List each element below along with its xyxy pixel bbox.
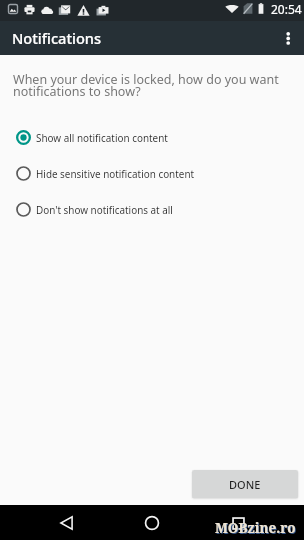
button[interactable]: Show all notification content	[0, 119, 304, 155]
button[interactable]: Don't show notifications at all	[0, 191, 304, 227]
staticText: MOBzine.ro	[216, 520, 297, 538]
staticText: Notifications	[12, 28, 102, 48]
button[interactable]: Back	[46, 506, 86, 540]
button[interactable]: Hide sensitive notification content	[0, 155, 304, 191]
button[interactable]: Home	[132, 506, 172, 540]
staticText: 20:54	[271, 1, 302, 17]
button[interactable]: More options	[270, 21, 304, 55]
staticText: DONE	[229, 477, 261, 492]
staticText: Hide sensitive notification content	[36, 167, 195, 180]
staticText: notifications to show?	[13, 83, 141, 100]
button[interactable]: Recents	[218, 506, 258, 540]
staticText: MOBzine.ro	[215, 519, 296, 537]
button[interactable]: DONE	[192, 470, 298, 498]
staticText: When your device is locked, how do you w…	[13, 71, 279, 88]
staticText: Show all notification content	[36, 131, 168, 144]
staticText: Don't show notifications at all	[36, 203, 173, 216]
